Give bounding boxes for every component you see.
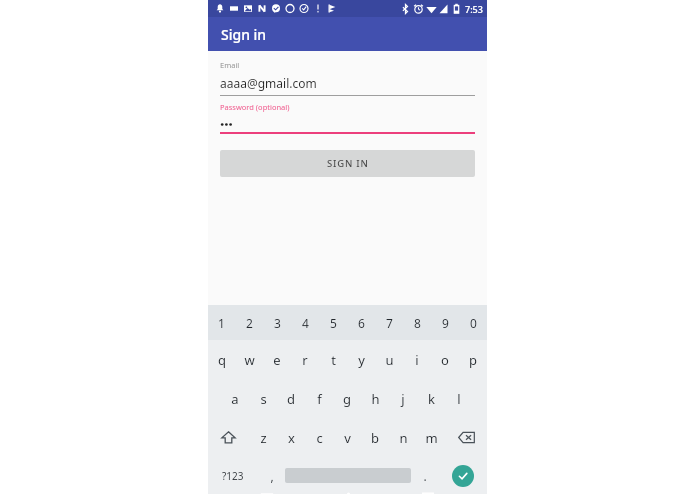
button[interactable]: 9 bbox=[431, 305, 459, 340]
button[interactable]: h bbox=[361, 379, 389, 418]
button[interactable]: 1 bbox=[208, 305, 235, 340]
staticText: i bbox=[415, 351, 419, 369]
button[interactable]: g bbox=[333, 379, 361, 418]
staticText: SIGN IN bbox=[327, 157, 369, 170]
button[interactable]: SIGN IN bbox=[220, 150, 475, 177]
button[interactable]: x bbox=[277, 418, 305, 457]
button[interactable]: Enter bbox=[452, 465, 474, 487]
staticText: o bbox=[441, 351, 449, 369]
button[interactable]: 2 bbox=[235, 305, 263, 340]
button[interactable]: Shift bbox=[208, 418, 249, 457]
staticText: r bbox=[302, 351, 308, 369]
staticText: 1 bbox=[218, 315, 225, 331]
button[interactable]: l bbox=[445, 379, 473, 418]
staticText: Sign in bbox=[221, 25, 267, 44]
staticText: h bbox=[371, 390, 380, 408]
staticText: 7 bbox=[386, 315, 393, 331]
staticText: 2 bbox=[246, 315, 253, 331]
button[interactable]: 5 bbox=[319, 305, 347, 340]
button[interactable]: c bbox=[305, 418, 333, 457]
button[interactable]: r bbox=[291, 340, 319, 379]
button[interactable]: 8 bbox=[403, 305, 431, 340]
button[interactable]: , bbox=[258, 457, 285, 494]
staticText: . bbox=[423, 468, 427, 484]
staticText: Password (optional) bbox=[220, 102, 290, 112]
staticText: 9 bbox=[442, 315, 449, 331]
staticText: f bbox=[317, 390, 322, 408]
button[interactable]: o bbox=[431, 340, 459, 379]
button[interactable]: d bbox=[277, 379, 305, 418]
button[interactable]: Password (optional) bbox=[220, 102, 475, 134]
button[interactable]: 0 bbox=[459, 305, 487, 340]
button[interactable]: s bbox=[249, 379, 277, 418]
staticText: k bbox=[428, 390, 435, 408]
button[interactable]: t bbox=[319, 340, 347, 379]
button[interactable]: q bbox=[208, 340, 235, 379]
button[interactable]: e bbox=[263, 340, 291, 379]
staticText: c bbox=[316, 429, 323, 447]
staticText: 6 bbox=[358, 315, 365, 331]
button[interactable]: ?123 bbox=[208, 457, 258, 494]
button[interactable]: u bbox=[375, 340, 403, 379]
staticText: 5 bbox=[330, 315, 337, 331]
staticText: a bbox=[231, 390, 239, 408]
button[interactable]: 4 bbox=[291, 305, 319, 340]
button[interactable]: v bbox=[333, 418, 361, 457]
button[interactable]: y bbox=[347, 340, 375, 379]
staticText: v bbox=[344, 429, 351, 447]
staticText: z bbox=[260, 429, 267, 447]
button[interactable]: b bbox=[361, 418, 389, 457]
staticText: m bbox=[425, 429, 438, 447]
staticText: 0 bbox=[470, 315, 477, 331]
staticText: 8 bbox=[414, 315, 421, 331]
staticText: l bbox=[457, 390, 461, 408]
staticText: d bbox=[287, 390, 295, 408]
button[interactable]: m bbox=[417, 418, 445, 457]
staticText: b bbox=[371, 429, 379, 447]
staticText: t bbox=[331, 351, 336, 369]
button[interactable]: Email bbox=[220, 60, 475, 96]
staticText: 7:53 bbox=[465, 3, 483, 15]
button[interactable]: k bbox=[417, 379, 445, 418]
button[interactable]: a bbox=[221, 379, 249, 418]
staticText: 4 bbox=[302, 315, 309, 331]
button[interactable]: p bbox=[459, 340, 487, 379]
staticText: x bbox=[288, 429, 295, 447]
button[interactable]: z bbox=[249, 418, 277, 457]
staticText: q bbox=[218, 351, 226, 369]
button[interactable]: 3 bbox=[263, 305, 291, 340]
button[interactable]: f bbox=[305, 379, 333, 418]
staticText: u bbox=[385, 351, 394, 369]
button[interactable]: 6 bbox=[347, 305, 375, 340]
button[interactable]: j bbox=[389, 379, 417, 418]
staticText: n bbox=[399, 429, 408, 447]
staticText: g bbox=[343, 390, 351, 408]
staticText: 3 bbox=[274, 315, 281, 331]
button[interactable]: w bbox=[235, 340, 263, 379]
staticText: p bbox=[469, 351, 477, 369]
button[interactable]: Backspace bbox=[445, 418, 487, 457]
staticText: ?123 bbox=[222, 469, 244, 483]
staticText: y bbox=[358, 351, 365, 369]
staticText: Email bbox=[220, 60, 240, 70]
staticText: e bbox=[273, 351, 281, 369]
staticText: w bbox=[244, 351, 255, 369]
staticText: j bbox=[401, 390, 405, 408]
button[interactable]: n bbox=[389, 418, 417, 457]
staticText: , bbox=[270, 468, 274, 484]
button[interactable]: . bbox=[411, 457, 438, 494]
staticText: aaaa@gmail.com bbox=[220, 75, 317, 91]
button[interactable]: 7 bbox=[375, 305, 403, 340]
button[interactable]: i bbox=[403, 340, 431, 379]
staticText: s bbox=[260, 390, 267, 408]
